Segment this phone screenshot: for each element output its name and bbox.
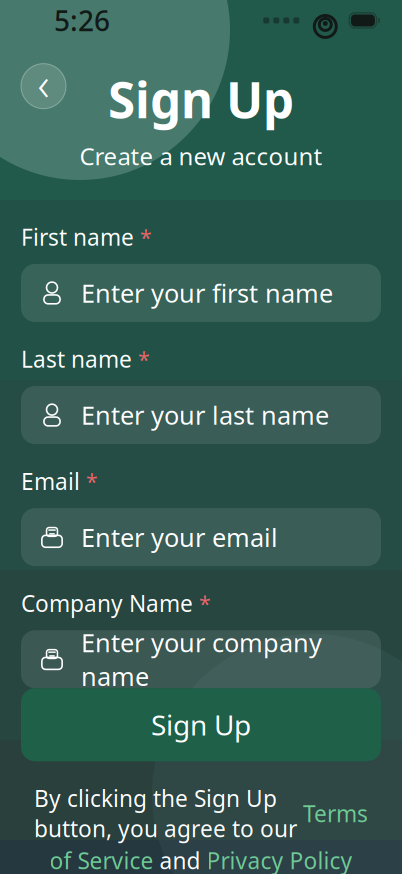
staticText: Enter your company name: [81, 626, 322, 693]
staticText: Email: [21, 466, 80, 496]
staticText: 5:26: [54, 2, 110, 39]
staticText: Company Name: [21, 588, 193, 618]
staticText: *: [138, 345, 150, 373]
staticText: Enter your first name: [81, 276, 333, 310]
staticText: ‹: [37, 53, 49, 113]
staticText: Enter your email: [81, 520, 278, 554]
staticText: *: [199, 589, 211, 617]
button[interactable]: of Service: [49, 845, 153, 874]
staticText: Create a new account: [79, 140, 322, 172]
button[interactable]: Enter your email: [21, 508, 381, 566]
button[interactable]: Enter your first name: [21, 264, 381, 322]
staticText: Last name: [21, 344, 132, 374]
staticText: First name: [21, 222, 134, 252]
button[interactable]: Sign Up: [21, 688, 381, 761]
staticText: Enter your last name: [81, 398, 329, 432]
button[interactable]: Privacy Policy: [206, 845, 352, 874]
button[interactable]: Back: [21, 64, 66, 109]
staticText: By clicking the Sign Up button, you agre…: [34, 783, 303, 843]
staticText: of Service: [49, 845, 153, 874]
staticText: Sign Up: [108, 66, 294, 132]
button[interactable]: Terms: [303, 798, 368, 828]
staticText: Terms: [303, 798, 368, 828]
button[interactable]: Enter your last name: [21, 386, 381, 444]
staticText: *: [86, 467, 98, 495]
staticText: *: [140, 223, 152, 251]
staticText: Sign Up: [151, 706, 251, 743]
staticText: Privacy Policy: [206, 845, 352, 874]
staticText: and: [153, 845, 206, 874]
button[interactable]: Enter your company name: [21, 630, 381, 688]
